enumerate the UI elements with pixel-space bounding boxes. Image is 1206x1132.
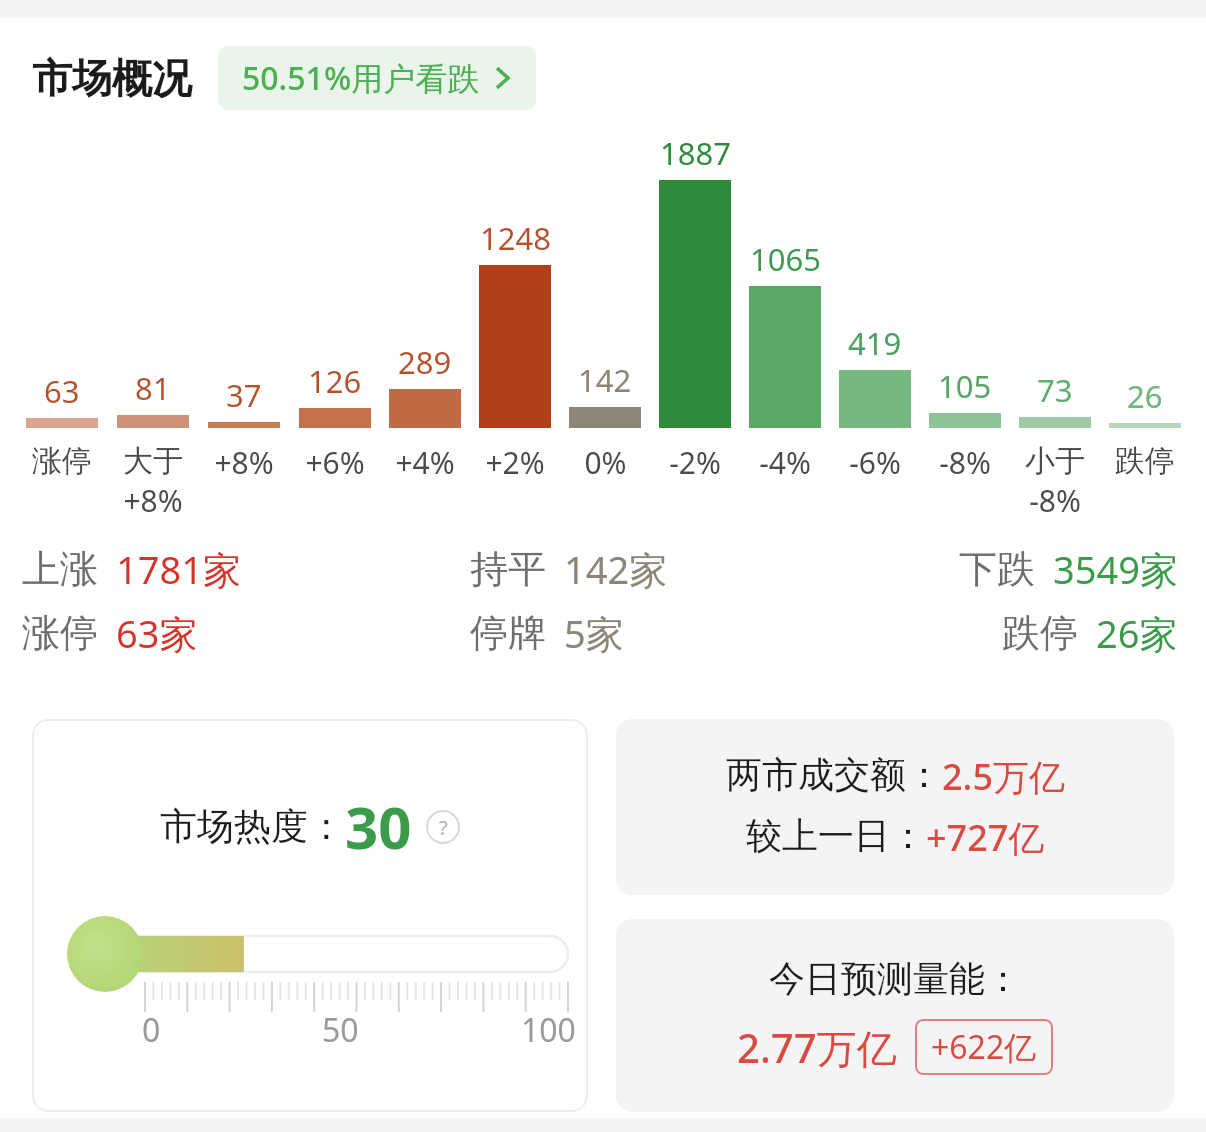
staticText: 两市成交额： bbox=[726, 752, 942, 797]
staticText: 1248 bbox=[480, 217, 551, 259]
staticText: 2.77万亿 bbox=[737, 1020, 897, 1075]
staticText: 大于 bbox=[123, 442, 183, 480]
button[interactable]: 50.51%用户看跌 bbox=[218, 46, 536, 110]
staticText: 跌停 bbox=[1002, 609, 1078, 657]
staticText: 50 bbox=[322, 1008, 359, 1052]
staticText: 2.5万亿 bbox=[942, 752, 1065, 801]
staticText: 小于 bbox=[1025, 442, 1085, 480]
staticText: 0% bbox=[584, 442, 627, 483]
staticText: 419 bbox=[848, 322, 902, 364]
staticText: -4% bbox=[759, 442, 811, 483]
staticText: 3549家 bbox=[1053, 543, 1178, 595]
button[interactable]: 市场热度： bbox=[32, 719, 588, 1112]
staticText: 142 bbox=[578, 359, 632, 401]
staticText: 涨停 bbox=[32, 442, 92, 480]
staticText: 停牌 bbox=[470, 609, 546, 657]
staticText: 73 bbox=[1037, 369, 1073, 411]
staticText: 涨停 bbox=[22, 609, 98, 657]
staticText: 63 bbox=[44, 370, 80, 412]
staticText: 50.51%用户看跌 bbox=[242, 56, 480, 100]
staticText: 26家 bbox=[1096, 607, 1178, 659]
staticText: 142家 bbox=[564, 543, 668, 595]
staticText: +4% bbox=[395, 442, 455, 483]
staticText: +622亿 bbox=[931, 1025, 1037, 1069]
staticText: +8% bbox=[214, 442, 274, 483]
staticText: 289 bbox=[398, 341, 452, 383]
staticText: 26 bbox=[1127, 375, 1163, 417]
staticText: 跌停 bbox=[1115, 442, 1175, 480]
staticText: 63家 bbox=[116, 607, 198, 659]
button[interactable]: 两市成交额： bbox=[616, 719, 1174, 895]
staticText: 1887 bbox=[660, 132, 731, 174]
staticText: -6% bbox=[849, 442, 901, 483]
staticText: 37 bbox=[226, 374, 262, 416]
staticText: +2% bbox=[485, 442, 545, 483]
staticText: 81 bbox=[135, 367, 171, 409]
staticText: 市场热度： bbox=[160, 803, 345, 850]
staticText: 126 bbox=[308, 360, 362, 402]
staticText: -2% bbox=[669, 442, 721, 483]
staticText: 较上一日： bbox=[746, 813, 926, 858]
button[interactable]: 今日预测量能： bbox=[616, 919, 1174, 1112]
staticText: -8% bbox=[1029, 480, 1081, 521]
staticText: 1065 bbox=[750, 238, 821, 280]
staticText: ? bbox=[439, 814, 448, 841]
staticText: 今日预测量能： bbox=[769, 956, 1021, 1001]
staticText: +8% bbox=[123, 480, 183, 521]
staticText: 0 bbox=[142, 1008, 161, 1052]
staticText: 持平 bbox=[470, 545, 546, 593]
staticText: +727亿 bbox=[926, 813, 1045, 862]
staticText: 市场概况 bbox=[32, 53, 192, 103]
staticText: 105 bbox=[938, 365, 992, 407]
staticText: -8% bbox=[939, 442, 991, 483]
staticText: 上涨 bbox=[22, 545, 98, 593]
staticText: 1781家 bbox=[116, 543, 241, 595]
staticText: 100 bbox=[521, 1008, 576, 1052]
staticText: 5家 bbox=[564, 607, 624, 659]
button[interactable]: 帮助说明 bbox=[426, 810, 460, 844]
staticText: 30 bbox=[345, 787, 412, 866]
staticText: 下跌 bbox=[959, 545, 1035, 593]
staticText: +6% bbox=[305, 442, 365, 483]
